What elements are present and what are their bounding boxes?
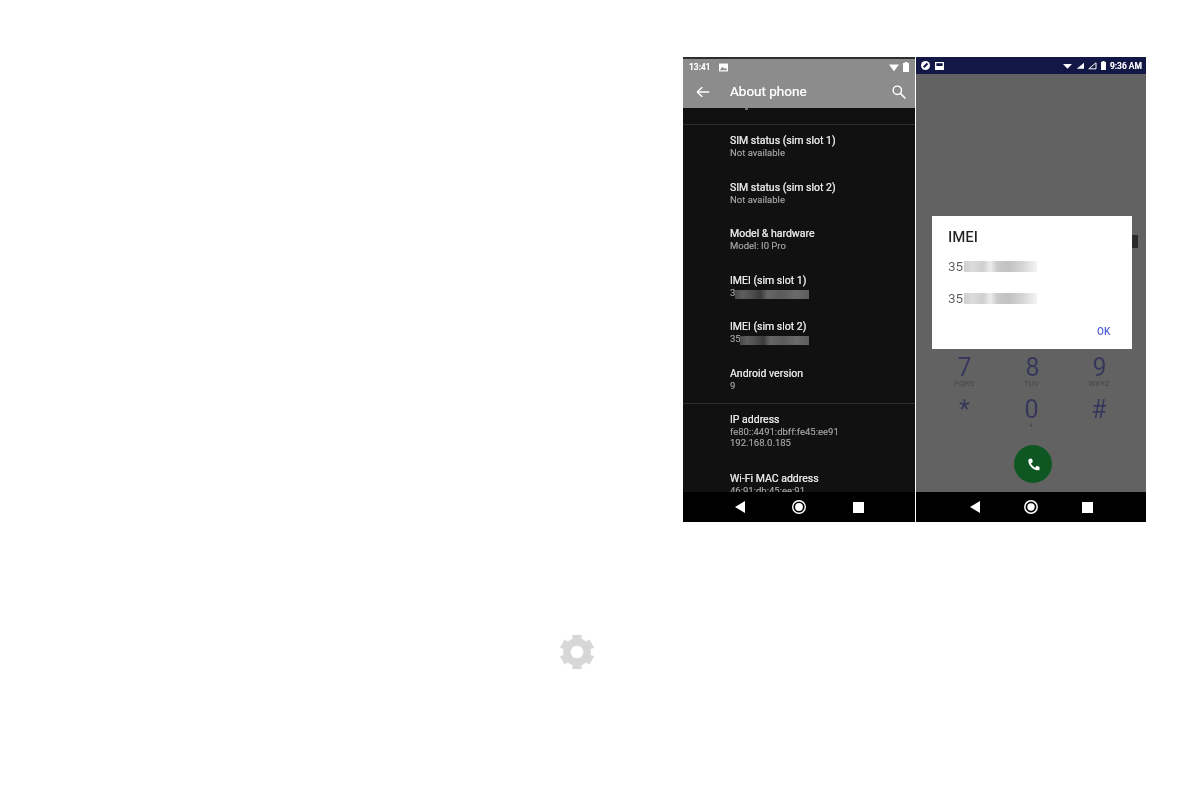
staticText: 9:36 AM <box>1110 61 1142 71</box>
button[interactable]: Home <box>1018 494 1044 520</box>
staticText: Not available <box>730 194 785 205</box>
staticText: 35 <box>948 258 964 274</box>
staticText: About phone <box>730 83 807 99</box>
staticText: 7 <box>957 353 972 382</box>
button[interactable]: Call <box>1014 445 1052 483</box>
staticText: 13:41 <box>689 62 711 72</box>
staticText: 46:91:db:45:ee:91 <box>730 485 805 496</box>
staticText: IP address <box>730 413 780 425</box>
staticText: OK <box>1097 326 1111 338</box>
button[interactable]: Recents <box>1074 494 1100 520</box>
staticText: Wi-Fi MAC address <box>730 472 819 484</box>
button[interactable]: 9 <box>1065 353 1132 397</box>
button[interactable]: Back <box>690 75 716 108</box>
staticText: fe80::4491:dbff:fe45:ee91 192.168.0.185 <box>730 426 839 448</box>
button[interactable]: Model & hardware <box>683 224 915 254</box>
staticText: 9 <box>1092 353 1107 382</box>
button[interactable]: * <box>930 395 998 439</box>
staticText: SIM status (sim slot 2) <box>730 181 836 193</box>
button[interactable]: Home <box>786 494 812 520</box>
button[interactable]: IMEI (sim slot 2) <box>683 317 915 349</box>
button[interactable]: Recents <box>845 494 871 520</box>
button[interactable]: Back <box>727 494 753 520</box>
staticText: 3 <box>730 287 736 298</box>
staticText: SIM status (sim slot 1) <box>730 134 836 146</box>
staticText: 35 <box>948 290 964 306</box>
staticText: IMEI (sim slot 1) <box>730 274 807 286</box>
staticText: # <box>1091 395 1107 424</box>
staticText: 9 <box>730 380 736 391</box>
button[interactable]: SIM status (sim slot 2) <box>683 178 915 208</box>
staticText: Model & hardware <box>730 227 815 239</box>
button[interactable]: 7 <box>930 353 998 397</box>
staticText: Model: I0 Pro <box>730 240 786 251</box>
staticText: PQRS <box>954 379 975 388</box>
staticText: + <box>1029 421 1034 430</box>
staticText: IMEI <box>948 228 979 246</box>
staticText: 8 <box>1025 353 1040 382</box>
button[interactable]: 0 <box>998 395 1065 439</box>
staticText: * <box>959 395 970 424</box>
button[interactable]: Wi-Fi MAC address <box>683 469 915 499</box>
button[interactable]: 8 <box>998 353 1065 397</box>
button[interactable]: Search <box>886 75 912 108</box>
button[interactable]: # <box>1065 395 1132 439</box>
staticText: TUV <box>1024 379 1040 388</box>
staticText: 35 <box>730 333 741 344</box>
button[interactable]: Back <box>962 494 988 520</box>
staticText: WXYZ <box>1088 379 1110 388</box>
staticText: 0 <box>1024 395 1039 424</box>
button[interactable]: IMEI (sim slot 1) <box>683 271 915 303</box>
button[interactable]: SIM status (sim slot 1) <box>683 131 915 161</box>
button[interactable]: Android version <box>683 364 915 394</box>
staticText: IMEI (sim slot 2) <box>730 320 807 332</box>
staticText: Android version <box>730 367 803 379</box>
button[interactable]: IP address <box>683 410 915 451</box>
button[interactable]: OK <box>1089 322 1119 342</box>
staticText: Not available <box>730 147 785 158</box>
